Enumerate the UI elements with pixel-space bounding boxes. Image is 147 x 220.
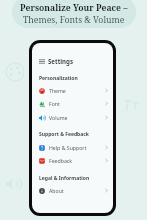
button[interactable]: Menu [32,55,113,67]
staticText: Support & Feedback [39,131,89,138]
staticText: Help & Support [49,144,87,151]
staticText: About [49,187,64,194]
button[interactable]: Feedback [32,155,113,166]
button[interactable]: Font [32,98,113,109]
other: Menu [39,59,45,64]
staticText: Themes, Fonts & Volume [23,14,125,26]
staticText: Personalization [39,75,78,82]
staticText: Settings [48,57,73,65]
staticText: Font [49,100,60,107]
button[interactable]: Volume [32,112,113,123]
staticText: Legal & Information [39,175,90,182]
staticText: Volume [49,114,68,121]
staticText: Theme [49,87,66,94]
button[interactable]: About [32,185,113,196]
staticText: Feedback [49,157,73,164]
button[interactable]: Theme [32,85,113,96]
button[interactable]: Help & Support [32,142,113,153]
staticText: Personalize Your Peace – [20,2,128,14]
